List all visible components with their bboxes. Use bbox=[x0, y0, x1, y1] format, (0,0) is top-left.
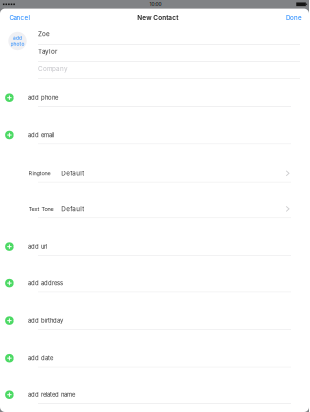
staticText: Done bbox=[286, 14, 302, 21]
button[interactable]: add date bbox=[0, 330, 309, 367]
button[interactable]: Text Tone bbox=[0, 183, 309, 218]
staticText: 10:00 bbox=[150, 1, 162, 7]
staticText: Text Tone bbox=[29, 206, 54, 212]
button[interactable]: add related name bbox=[0, 367, 309, 404]
staticText: add url bbox=[28, 243, 47, 250]
button[interactable]: Done bbox=[282, 11, 309, 24]
button[interactable]: add phone bbox=[0, 79, 309, 107]
staticText: Company bbox=[38, 65, 68, 72]
button[interactable]: add url bbox=[0, 218, 309, 256]
staticText: add email bbox=[28, 131, 54, 139]
button[interactable]: Ringtone bbox=[0, 144, 309, 183]
button[interactable]: add bbox=[8, 32, 27, 50]
staticText: Default bbox=[61, 169, 84, 177]
staticText: Taylor bbox=[38, 48, 57, 55]
button[interactable]: add email bbox=[0, 107, 309, 144]
staticText: Cancel bbox=[9, 14, 29, 21]
staticText: New Contact bbox=[137, 14, 178, 21]
staticText: add bbox=[13, 35, 22, 41]
staticText: add address bbox=[28, 280, 63, 287]
staticText: add phone bbox=[28, 94, 58, 101]
staticText: add related name bbox=[28, 391, 75, 398]
staticText: Zoe bbox=[38, 30, 50, 38]
button[interactable]: add birthday bbox=[0, 292, 309, 330]
staticText: photo bbox=[10, 41, 24, 47]
staticText: Default bbox=[61, 205, 84, 213]
button[interactable]: Cancel bbox=[0, 11, 33, 24]
staticText: Ringtone bbox=[29, 170, 51, 177]
button[interactable]: add address bbox=[0, 256, 309, 292]
staticText: add birthday bbox=[28, 317, 63, 324]
staticText: add date bbox=[28, 355, 53, 362]
